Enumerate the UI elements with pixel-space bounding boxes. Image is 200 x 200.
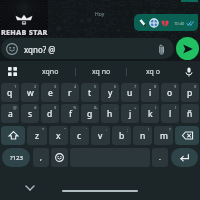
button[interactable]: e [41,83,59,102]
staticText: x [56,130,61,142]
button[interactable]: z [27,126,47,145]
button[interactable]: k [141,104,159,123]
button[interactable]: v [91,126,110,145]
button[interactable]: w [21,83,39,102]
button[interactable]: n [133,126,152,145]
staticText: ! [148,127,150,132]
staticText: xq o [146,67,160,77]
staticText: $ [54,105,57,110]
staticText: xqno [42,67,59,77]
staticText: u [127,87,133,99]
staticText: . [159,153,161,163]
button[interactable]: xqno [25,61,76,82]
button[interactable]: , [33,148,49,167]
staticText: h [107,108,113,120]
staticText: w [27,87,34,99]
button[interactable]: d [41,104,59,123]
staticText: 6 [114,84,117,89]
staticText: 9 [174,84,177,89]
button[interactable]: m [154,126,173,145]
button[interactable]: Enter [171,148,198,167]
staticText: , [40,153,42,163]
button[interactable]: i [141,83,159,102]
staticText: ' [86,127,87,132]
staticText: : [106,127,108,132]
button[interactable]: t [81,83,99,102]
button[interactable] [51,148,68,167]
button[interactable]: 10:40 [134,14,198,31]
staticText: + [134,105,137,110]
button[interactable]: Hide keyboard [21,183,39,193]
staticText: s [28,108,33,120]
button[interactable]: q [1,83,19,102]
button[interactable]: ñ [181,104,199,123]
button[interactable]: REHAB STAR [0,0,48,36]
button[interactable]: b [112,126,131,145]
button[interactable]: xq no [76,61,127,82]
staticText: 7 [134,84,137,89]
staticText: * [42,127,45,132]
staticText: 5 [94,84,97,89]
button[interactable]: x [49,126,68,145]
button[interactable]: ?123 [2,148,30,167]
button[interactable]: c [70,126,89,145]
staticText: ? [169,127,171,132]
button[interactable]: Backspace [175,126,199,145]
staticText: k [148,108,153,120]
staticText: 2 [34,84,37,89]
button[interactable]: xqno? @ [1,38,174,59]
staticText: z [35,130,39,142]
staticText: a [8,108,13,120]
button[interactable]: s [21,104,39,123]
button[interactable]: Voice input [178,61,200,82]
button[interactable]: r [61,83,79,102]
staticText: y [108,87,113,99]
staticText: ; [127,127,129,132]
button[interactable]: Hoy [91,10,109,19]
staticText: j [129,108,132,120]
staticText: # [34,105,37,110]
button[interactable]: Send [176,37,199,60]
button[interactable]: Keyboard options [0,61,25,82]
button[interactable]: u [121,83,139,102]
staticText: 3 [54,84,57,89]
staticText: 10:40 [174,21,185,26]
staticText: 4 [74,84,77,89]
staticText: c [77,130,82,142]
staticText: 8 [154,84,157,89]
staticText: ñ [187,108,193,120]
staticText: - [115,105,117,110]
staticText: xq no [92,67,111,77]
staticText: r [68,87,72,99]
button[interactable]: p [181,83,199,102]
staticText: d [47,108,53,120]
staticText: p [187,87,193,99]
staticText: g [87,108,93,120]
staticText: f [69,108,72,120]
staticText: REHAB STAR [1,27,48,37]
staticText: xqno? @ [24,44,56,55]
staticText: ( [155,105,157,110]
button[interactable]: g [81,104,99,123]
staticText: % [73,105,77,110]
button[interactable]: f [61,104,79,123]
button[interactable]: . [152,148,168,167]
button[interactable]: l [161,104,179,123]
staticText: 0 [194,84,197,89]
staticText: i [149,87,152,99]
button[interactable]: a [1,104,19,123]
button[interactable]: y [101,83,119,102]
staticText: 1 [14,84,17,89]
staticText: ?123 [10,154,23,162]
staticText: Hoy [95,11,105,18]
button[interactable]: o [161,83,179,102]
button[interactable]: xq o [127,61,178,82]
staticText: b [119,130,125,142]
button[interactable]: j [121,104,139,123]
button[interactable]: h [101,104,119,123]
staticText: o [167,87,173,99]
staticText: n [140,130,146,142]
staticText: & [94,105,97,110]
button[interactable]: Shift [1,126,25,145]
